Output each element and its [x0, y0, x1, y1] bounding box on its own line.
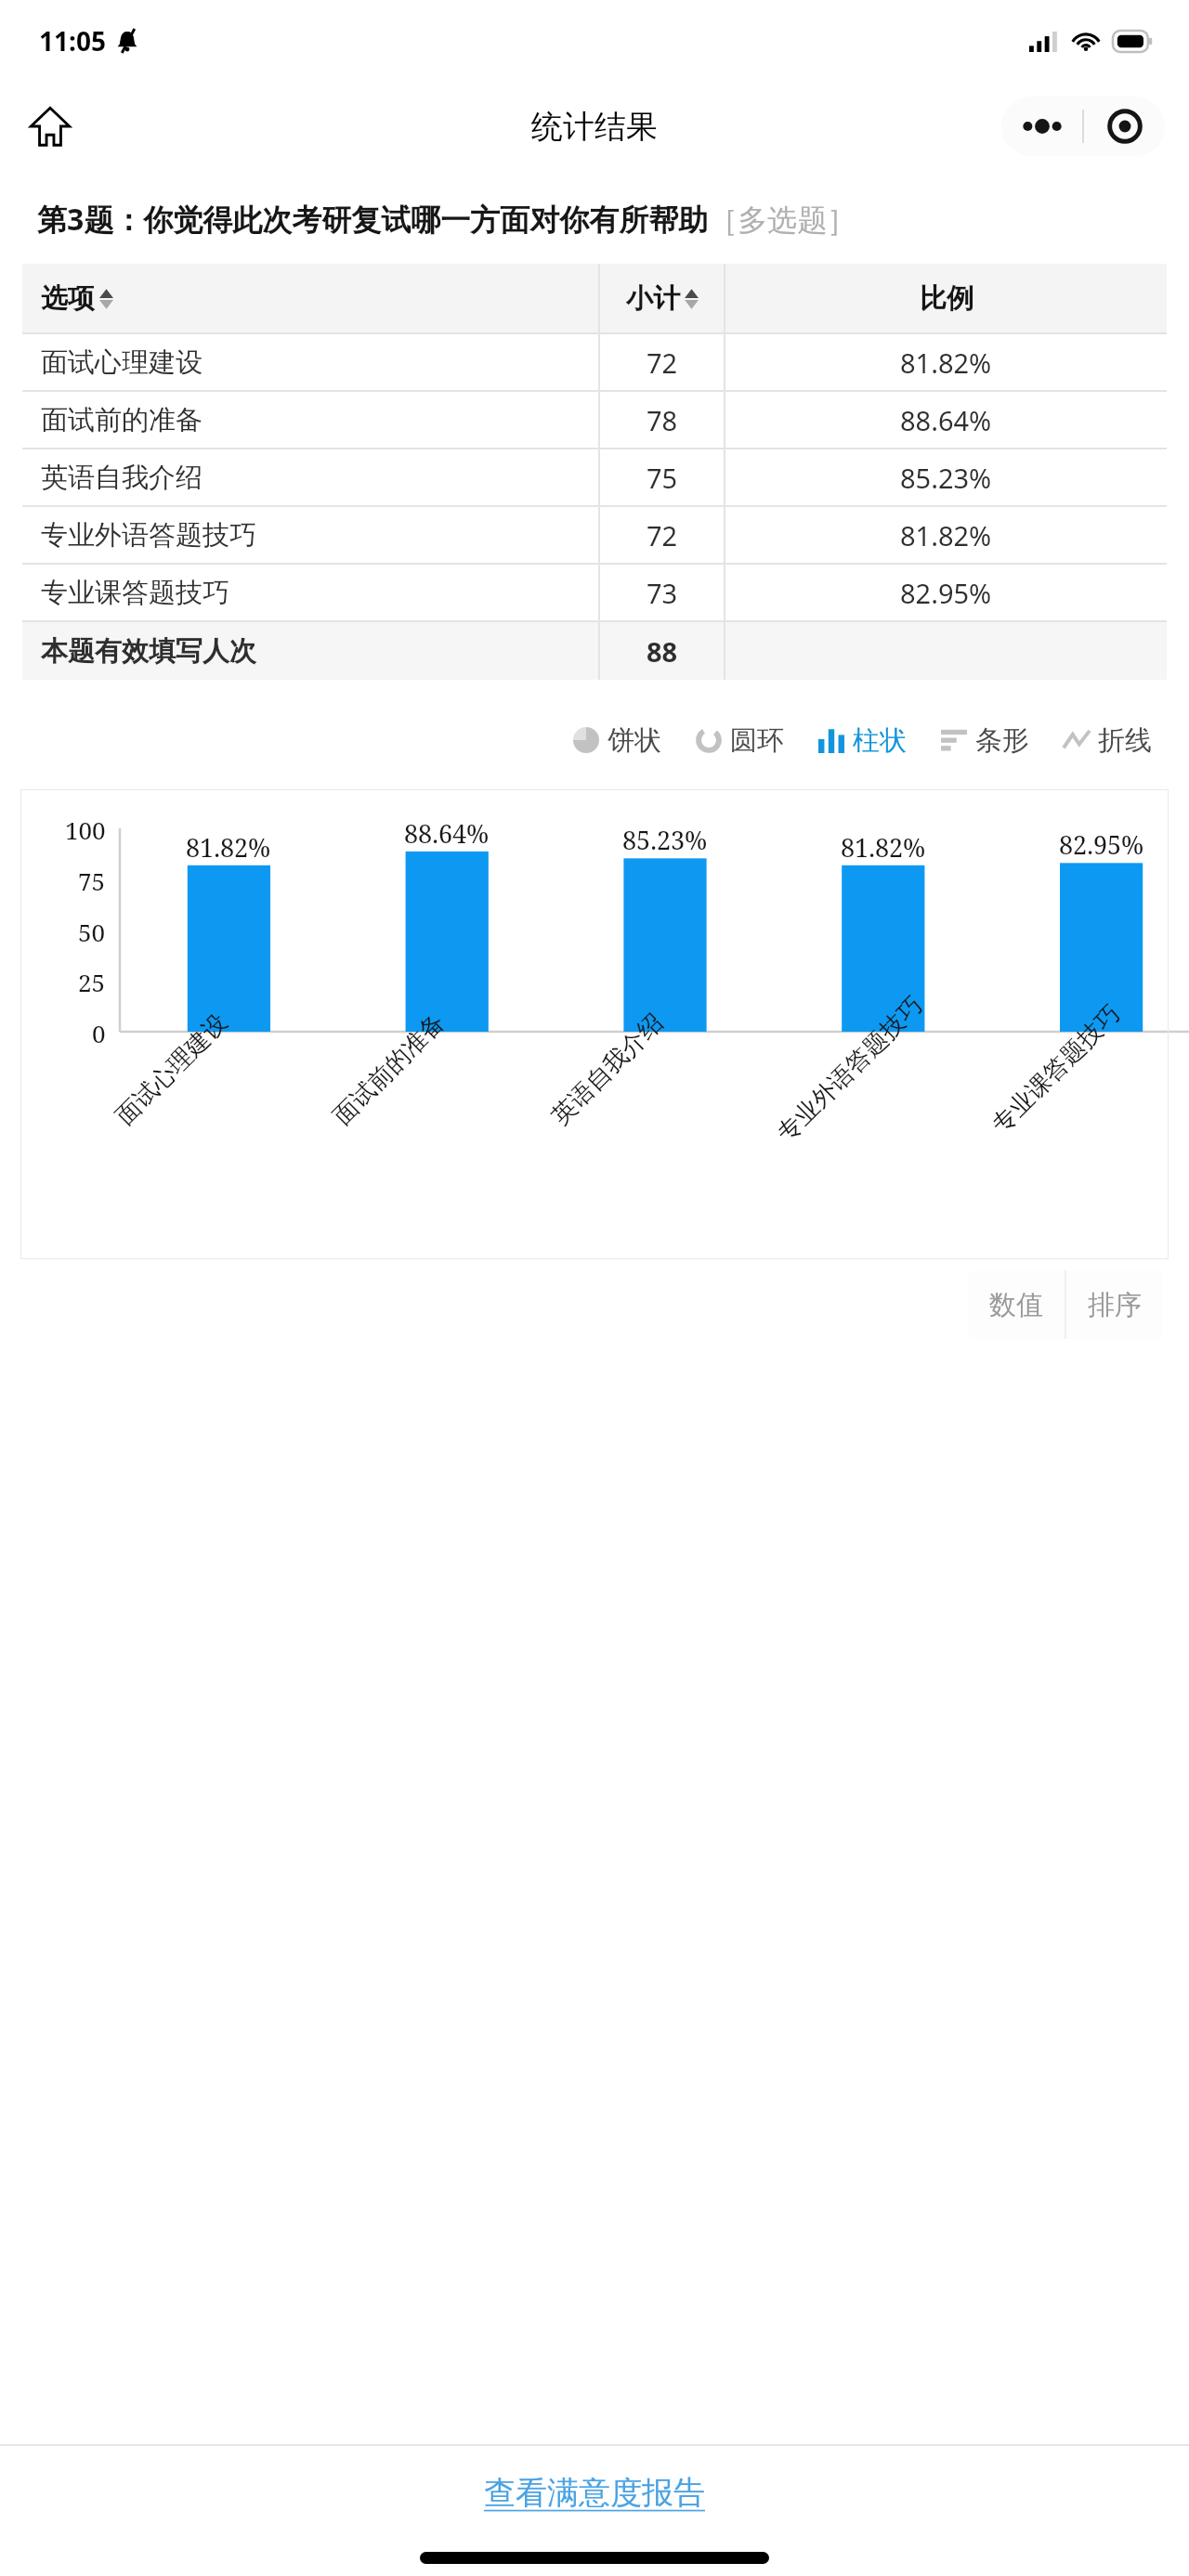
staticText: 小计 [626, 281, 680, 316]
staticText: 柱状 [853, 723, 907, 758]
staticText: 81.82% [900, 345, 992, 381]
button[interactable]: 专业外语答题技巧 [22, 507, 1167, 563]
button[interactable]: 条形 [926, 704, 1044, 776]
staticText: 数值 [989, 1288, 1043, 1322]
staticText: 专业外语答题技巧 [41, 518, 256, 553]
staticText: 面试心理建设 [110, 1007, 234, 1131]
button[interactable]: More [1001, 97, 1082, 156]
staticText: 条形 [975, 723, 1029, 758]
button[interactable]: 英语自我介绍 [22, 449, 1167, 505]
staticText: 81.82% [841, 830, 926, 865]
staticText: 面试心理建设 [41, 345, 203, 380]
staticText: 78 [647, 402, 678, 438]
staticText: 饼状 [608, 723, 661, 758]
staticText: 72 [647, 345, 678, 381]
staticText: 75 [78, 865, 106, 897]
button[interactable]: 面试心理建设 [22, 334, 1167, 390]
staticText: 专业课答题技巧 [41, 576, 229, 610]
staticText: 88.64% [900, 402, 992, 438]
staticText: 0 [92, 1017, 106, 1049]
staticText: 排序 [1088, 1288, 1142, 1322]
staticText: 第3题：你觉得此次考研复试哪一方面对你有所帮助［多选题］ [37, 199, 857, 240]
staticText: 查看满意度报告 [484, 2473, 705, 2513]
staticText: 英语自我介绍 [545, 1007, 670, 1131]
staticText: 25 [78, 966, 106, 998]
button[interactable]: 专业课答题技巧 [22, 565, 1167, 620]
button[interactable]: 选项 [22, 264, 598, 332]
staticText: 圆环 [730, 723, 784, 758]
staticText: 选项 [41, 281, 95, 316]
staticText: 50 [78, 916, 106, 948]
staticText: 比例 [920, 281, 973, 316]
button[interactable]: Close [1084, 97, 1165, 156]
staticText: 88 [647, 633, 678, 670]
staticText: 85.23% [900, 460, 992, 496]
staticText: 82.95% [900, 575, 992, 611]
staticText: 82.95% [1059, 827, 1144, 862]
staticText: 85.23% [622, 823, 708, 857]
staticText: 专业外语答题技巧 [771, 990, 929, 1148]
staticText: 11:05 [39, 23, 106, 59]
staticText: 折线 [1098, 723, 1152, 758]
staticText: 100 [65, 813, 106, 846]
button[interactable]: Home [20, 97, 80, 156]
staticText: 81.82% [900, 517, 992, 553]
staticText: 73 [647, 575, 678, 611]
button[interactable]: 比例 [725, 264, 1167, 332]
staticText: 面试前的准备 [327, 1007, 451, 1131]
staticText: 面试前的准备 [41, 403, 203, 437]
button[interactable]: 数值 [968, 1270, 1065, 1339]
button[interactable]: 排序 [1066, 1270, 1163, 1339]
staticText: 英语自我介绍 [41, 461, 203, 495]
button[interactable]: 折线 [1049, 704, 1167, 776]
button[interactable]: 饼状 [558, 704, 676, 776]
button[interactable]: 小计 [600, 264, 724, 332]
staticText: 本题有效填写人次 [41, 634, 256, 669]
staticText: 专业课答题技巧 [986, 999, 1127, 1140]
staticText: 88.64% [404, 816, 490, 851]
button[interactable]: 柱状 [804, 704, 921, 776]
button[interactable]: 面试前的准备 [22, 392, 1167, 448]
button[interactable]: 查看满意度报告 [0, 2446, 1189, 2539]
button[interactable]: 圆环 [681, 704, 799, 776]
staticText: 统计结果 [531, 107, 658, 147]
staticText: 75 [647, 460, 678, 496]
staticText: 81.82% [186, 830, 271, 865]
staticText: 72 [647, 517, 678, 553]
